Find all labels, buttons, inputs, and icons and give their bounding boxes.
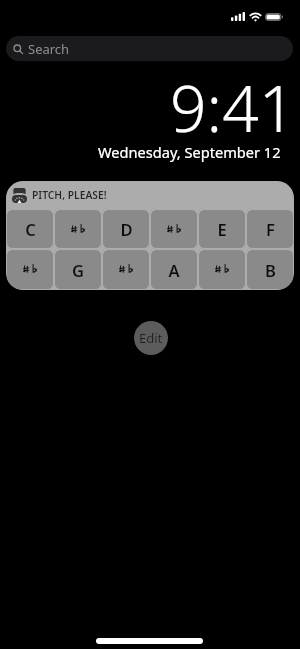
staticText: Search <box>28 40 70 58</box>
staticText: B <box>265 259 276 281</box>
button[interactable]: C <box>7 210 53 248</box>
button[interactable]: D <box>103 210 149 248</box>
button[interactable]: Sharp flat <box>55 210 101 248</box>
button[interactable]: Sharp flat <box>103 250 149 289</box>
staticText: G <box>72 259 84 281</box>
staticText: Edit <box>139 329 163 347</box>
other: Battery <box>265 13 283 21</box>
other: Cellular signal <box>231 12 245 21</box>
staticText: PITCH, PLEASE! <box>32 188 107 202</box>
staticText: 9:41 <box>170 64 296 151</box>
button[interactable]: G <box>55 250 101 289</box>
button[interactable]: F <box>247 210 293 248</box>
staticText: E <box>217 218 227 240</box>
button[interactable]: E <box>199 210 245 248</box>
staticText: Wednesday, September 12 <box>98 142 281 162</box>
button[interactable]: B <box>247 250 293 289</box>
staticText: D <box>120 218 133 240</box>
button[interactable]: Edit <box>134 321 168 355</box>
staticText: F <box>266 218 275 240</box>
staticText: A <box>168 259 180 281</box>
other: Wi-Fi <box>249 12 262 21</box>
staticText: C <box>25 218 36 240</box>
button[interactable]: Sharp flat <box>151 210 197 248</box>
button[interactable]: Search <box>6 36 293 61</box>
button[interactable]: A <box>151 250 197 289</box>
button[interactable]: Sharp flat <box>7 250 53 289</box>
button[interactable]: Sharp flat <box>199 250 245 289</box>
